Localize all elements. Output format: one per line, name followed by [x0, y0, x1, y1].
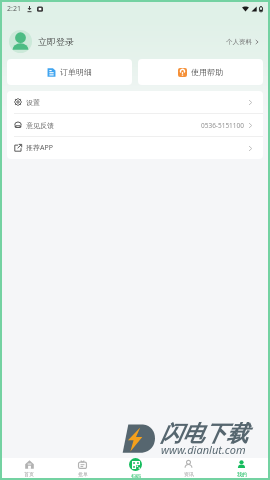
button[interactable]: 抢单	[56, 458, 109, 478]
staticText: 订单明细	[60, 67, 92, 77]
staticText: 闪电下载	[160, 420, 248, 448]
staticText: 0536-5151100	[201, 121, 244, 130]
button[interactable]: 立即登录	[9, 30, 74, 53]
button[interactable]: 订单明细	[7, 59, 132, 85]
staticText: 资讯	[184, 471, 194, 477]
staticText: 设置	[26, 98, 40, 107]
staticText: 扫码	[131, 473, 141, 478]
staticText: 我的	[237, 471, 247, 477]
button[interactable]: 个人资料	[226, 38, 260, 46]
staticText: 个人资料	[226, 38, 252, 46]
button[interactable]: 扫码	[109, 458, 162, 478]
button[interactable]: 首页	[2, 458, 56, 478]
staticText: 立即登录	[38, 36, 74, 47]
button[interactable]: 推荐APP	[7, 137, 263, 159]
button[interactable]: 资讯	[162, 458, 215, 478]
button[interactable]: 意见反馈	[7, 114, 263, 136]
staticText: www.dianlut.com	[161, 442, 246, 457]
button[interactable]: 我的	[215, 458, 268, 478]
staticText: 首页	[24, 471, 34, 477]
staticText: 使用帮助	[191, 67, 223, 77]
staticText: 意见反馈	[26, 121, 54, 130]
button[interactable]: 使用帮助	[138, 59, 263, 85]
staticText: 推荐APP	[26, 143, 53, 153]
staticText: 2:21	[7, 4, 21, 14]
button[interactable]: 设置	[7, 91, 263, 113]
staticText: 抢单	[78, 471, 88, 477]
